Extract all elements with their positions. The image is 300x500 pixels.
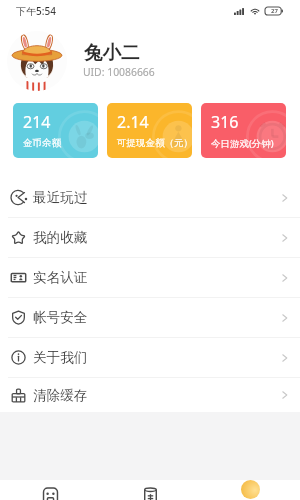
staticText: 今日游戏(分钟) <box>211 137 274 150</box>
button[interactable]: 帐号安全 <box>0 298 300 338</box>
staticText: 2.14 <box>117 111 149 133</box>
button[interactable]: Games <box>0 480 100 500</box>
button[interactable]: 214 <box>13 103 98 158</box>
button[interactable]: 关于我们 <box>0 338 300 378</box>
staticText: 金币余额 <box>23 137 61 149</box>
staticText: 可提现金额（元） <box>117 137 192 149</box>
staticText: 214 <box>23 111 51 133</box>
button[interactable]: Earn money <box>100 480 200 500</box>
staticText: 最近玩过 <box>33 189 88 206</box>
button[interactable]: 316 <box>201 103 286 158</box>
staticText: 我的收藏 <box>33 229 88 246</box>
button[interactable]: 我的收藏 <box>0 218 300 258</box>
button[interactable]: Avatar <box>7 31 67 91</box>
staticText: UID: 10086666 <box>83 65 155 79</box>
button[interactable]: 最近玩过 <box>0 178 300 218</box>
staticText: 清除缓存 <box>33 387 88 404</box>
staticText: 316 <box>211 111 239 133</box>
staticText: 兔小二 <box>84 41 140 64</box>
button[interactable]: 实名认证 <box>0 258 300 298</box>
staticText: 27 <box>271 7 278 15</box>
staticText: 帐号安全 <box>33 309 88 326</box>
staticText: 下午5:54 <box>16 4 56 18</box>
button[interactable]: Me <box>200 480 300 500</box>
staticText: 实名认证 <box>33 269 88 286</box>
staticText: 关于我们 <box>33 349 88 366</box>
button[interactable]: 清除缓存 <box>0 378 300 412</box>
button[interactable]: 2.14 <box>107 103 192 158</box>
